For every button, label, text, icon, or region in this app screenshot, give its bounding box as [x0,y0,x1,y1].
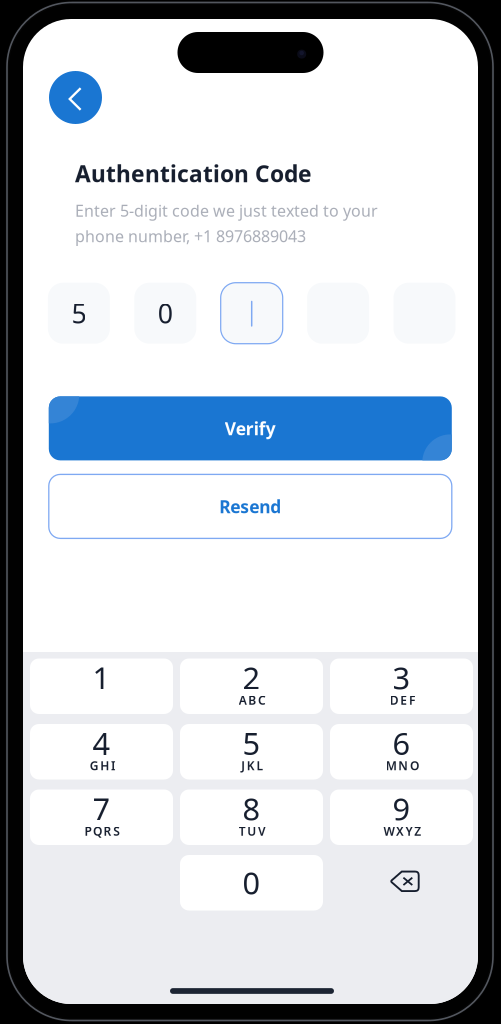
staticText: 4 [92,723,110,763]
staticText: JKL [241,757,263,773]
button[interactable]: Back [49,71,102,124]
button[interactable]: 2 [180,658,323,714]
staticText: WXYZ [383,823,421,839]
button[interactable]: 8 [180,789,323,845]
staticText: 2 [242,657,260,698]
button[interactable]: 0 [180,855,323,910]
button[interactable]: 9 [330,789,473,845]
staticText: 5 [242,723,260,763]
staticText: Authentication Code [75,158,312,188]
staticText: Verify [225,417,276,440]
staticText: MNO [386,757,419,773]
staticText: Resend [219,495,281,518]
staticText: 6 [392,723,410,763]
staticText: Enter 5-digit code we just texted to you… [75,200,378,221]
button[interactable]: 5 [180,724,323,779]
staticText: 8 [242,788,260,829]
staticText: 5 [71,295,86,331]
staticText: 1 [92,657,110,698]
button[interactable]: 3 [330,658,473,714]
button[interactable]: Resend [49,474,452,538]
staticText: GHI [90,757,115,773]
button[interactable]: 1 [30,658,173,714]
staticText: 9 [392,788,410,829]
staticText: ABC [239,692,266,708]
staticText: PQRS [84,823,120,839]
button[interactable]: Verify [49,396,452,460]
button[interactable]: 7 [30,789,173,845]
staticText: 7 [92,788,110,829]
staticText: TUV [239,823,266,839]
staticText: DEF [390,692,415,708]
staticText: 0 [158,295,173,331]
button[interactable]: Delete [330,855,473,910]
button[interactable]: 4 [30,724,173,779]
staticText: 0 [242,862,260,903]
staticText: 3 [392,657,410,698]
button[interactable]: 6 [330,724,473,779]
staticText: phone number, +1 8976889043 [75,225,306,247]
